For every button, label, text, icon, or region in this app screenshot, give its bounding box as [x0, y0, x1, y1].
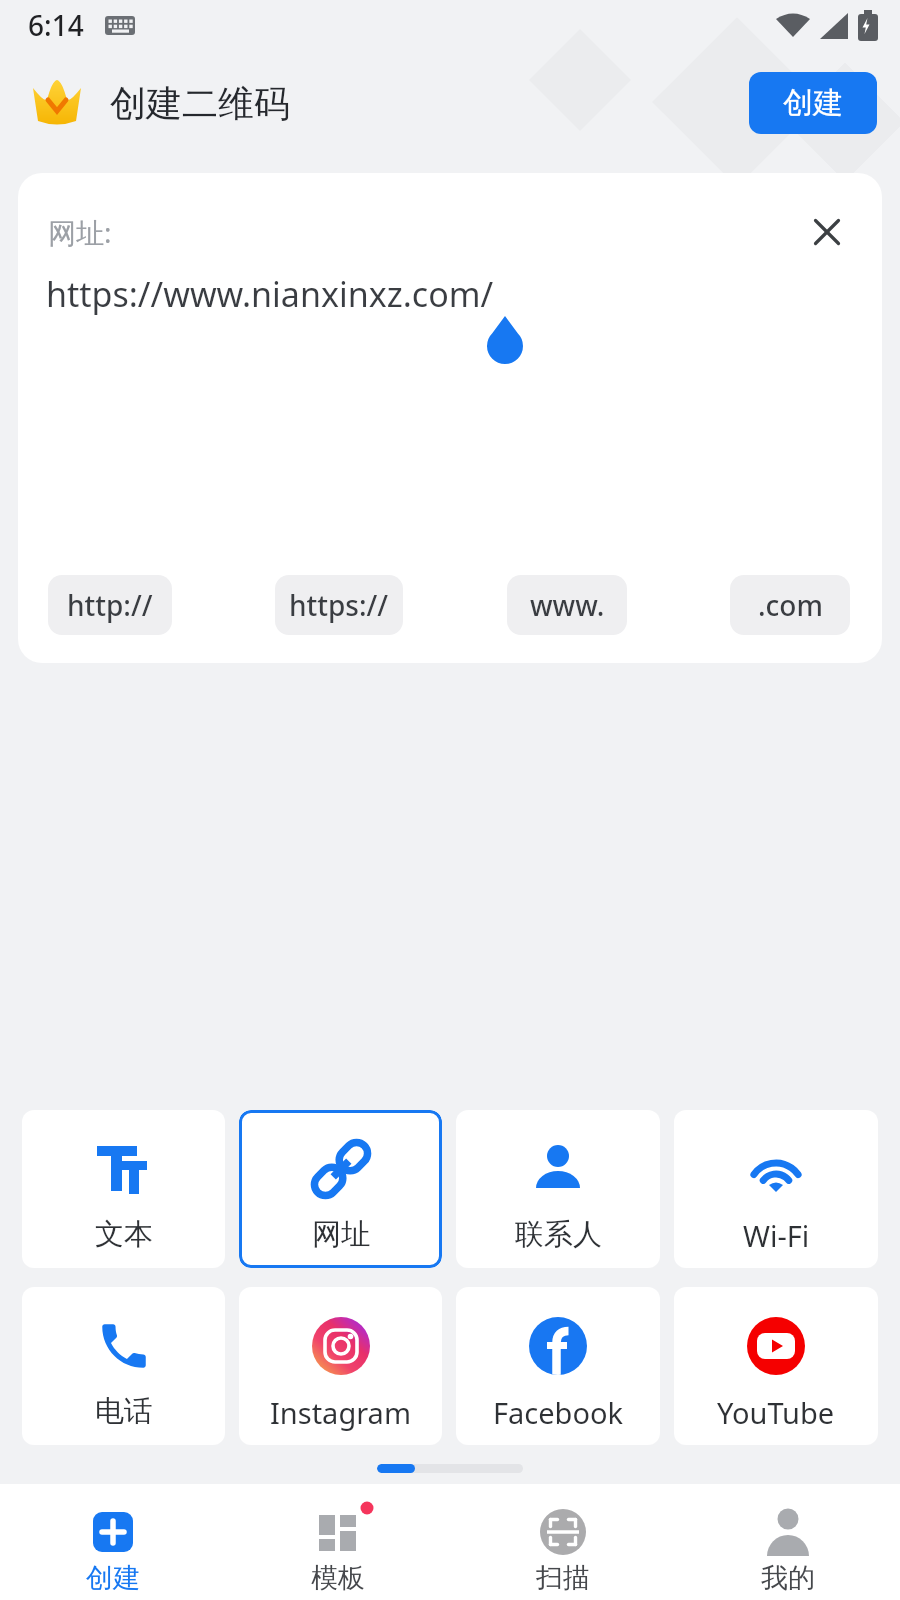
staticText: Wi-Fi: [743, 1216, 810, 1255]
button[interactable]: 模板: [225, 1484, 450, 1600]
staticText: https://: [289, 586, 389, 624]
staticText: http://: [67, 586, 153, 624]
button[interactable]: www.: [507, 575, 627, 635]
staticText: 网址:: [48, 213, 112, 251]
staticText: Facebook: [493, 1393, 624, 1432]
staticText: 电话: [95, 1393, 153, 1430]
staticText: https://www.nianxinxz.com/: [46, 271, 494, 317]
staticText: 网址: [312, 1216, 370, 1253]
staticText: .com: [758, 586, 823, 624]
button[interactable]: http://: [48, 575, 172, 635]
button[interactable]: 联系人: [456, 1110, 660, 1268]
button[interactable]: [814, 219, 840, 245]
button[interactable]: 扫描: [450, 1484, 675, 1600]
button[interactable]: 创建: [0, 1484, 225, 1600]
staticText: 扫描: [536, 1561, 590, 1595]
staticText: 创建: [783, 84, 843, 122]
staticText: YouTube: [717, 1393, 835, 1432]
staticText: 6:14: [28, 6, 84, 44]
button[interactable]: Instagram: [239, 1287, 442, 1445]
staticText: 联系人: [515, 1216, 602, 1253]
button[interactable]: https://: [275, 575, 403, 635]
button[interactable]: Wi-Fi: [674, 1110, 878, 1268]
staticText: 文本: [95, 1216, 153, 1253]
button[interactable]: 我的: [675, 1484, 900, 1600]
staticText: 创建二维码: [110, 81, 290, 126]
staticText: www.: [530, 586, 605, 624]
staticText: 我的: [761, 1561, 815, 1595]
button[interactable]: 文本: [22, 1110, 225, 1268]
button[interactable]: YouTube: [674, 1287, 878, 1445]
button[interactable]: 网址: [239, 1110, 442, 1268]
button[interactable]: Facebook: [456, 1287, 660, 1445]
staticText: Instagram: [270, 1393, 411, 1432]
button[interactable]: 创建: [749, 72, 877, 134]
staticText: 模板: [311, 1561, 365, 1595]
button[interactable]: 电话: [22, 1287, 225, 1445]
staticText: 创建: [86, 1561, 140, 1595]
button[interactable]: .com: [730, 575, 850, 635]
